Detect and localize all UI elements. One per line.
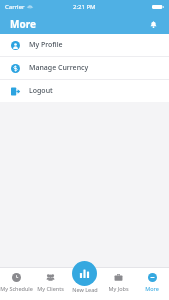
staticText: New Lead bbox=[72, 286, 98, 293]
button[interactable]: Logout bbox=[0, 80, 169, 102]
button[interactable]: My Jobs bbox=[101, 268, 135, 292]
staticText: Logout bbox=[29, 86, 53, 96]
staticText: My Schedule bbox=[0, 285, 33, 292]
staticText: More bbox=[145, 285, 159, 292]
staticText: My Clients bbox=[37, 285, 64, 292]
button[interactable]: Manage Currency bbox=[0, 57, 169, 79]
button[interactable]: My Schedule bbox=[0, 268, 33, 292]
button[interactable]: My Clients bbox=[33, 268, 67, 292]
staticText: More bbox=[10, 17, 36, 31]
staticText: Carrier bbox=[5, 3, 25, 11]
button[interactable]: Notifications bbox=[146, 17, 160, 31]
staticText: My Profile bbox=[29, 40, 63, 50]
staticText: Manage Currency bbox=[29, 63, 89, 73]
button[interactable]: New Lead bbox=[72, 261, 97, 286]
button[interactable]: My Profile bbox=[0, 34, 169, 56]
staticText: My Jobs bbox=[108, 285, 129, 292]
button[interactable]: More bbox=[135, 268, 169, 292]
staticText: 2:21 PM bbox=[73, 3, 96, 11]
